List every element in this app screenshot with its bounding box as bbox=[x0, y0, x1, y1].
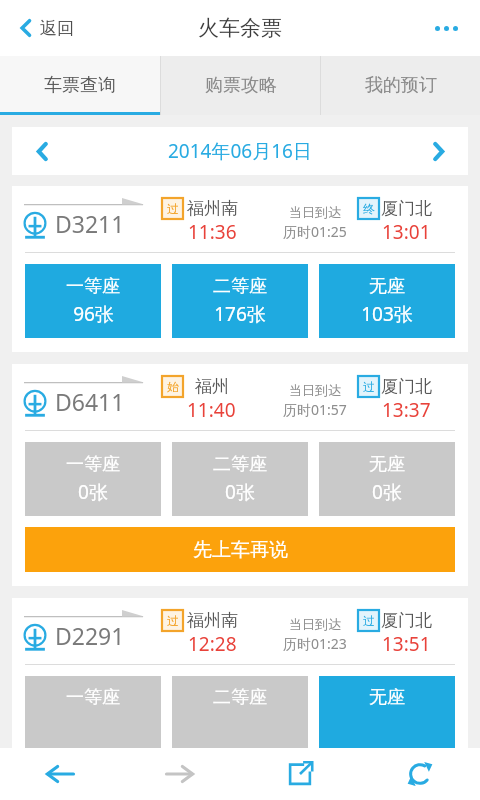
staticText: 火车余票 bbox=[198, 15, 282, 41]
staticText: 历时01:23 bbox=[283, 634, 347, 653]
staticText: 13:51 bbox=[382, 631, 431, 657]
staticText: D3211 bbox=[55, 208, 125, 239]
button[interactable]: 一等座 bbox=[25, 676, 161, 748]
button[interactable]: 我的预订 bbox=[321, 56, 480, 115]
button[interactable]: 一等座 bbox=[25, 442, 161, 516]
button[interactable]: Share bbox=[240, 748, 360, 800]
button[interactable]: 返回 bbox=[14, 11, 78, 45]
staticText: 0张 bbox=[225, 479, 255, 505]
staticText: 厦门北 bbox=[381, 610, 432, 631]
staticText: 返回 bbox=[40, 18, 74, 39]
staticText: 无座 bbox=[369, 686, 405, 709]
staticText: 先上车再说 bbox=[193, 538, 288, 562]
staticText: 车票查询 bbox=[44, 74, 116, 97]
staticText: 终 bbox=[363, 201, 375, 216]
staticText: 厦门北 bbox=[381, 198, 432, 219]
staticText: 过 bbox=[363, 379, 375, 394]
button[interactable]: 车票查询 bbox=[0, 56, 160, 115]
staticText: 我的预订 bbox=[365, 74, 437, 97]
staticText: 二等座 bbox=[213, 275, 267, 298]
staticText: 始 bbox=[167, 379, 179, 394]
staticText: 176张 bbox=[214, 301, 266, 327]
button[interactable]: Forward bbox=[120, 748, 240, 800]
staticText: 当日到达 bbox=[289, 204, 341, 220]
staticText: 13:37 bbox=[382, 397, 431, 423]
button[interactable]: 二等座 bbox=[172, 676, 308, 748]
staticText: D6411 bbox=[55, 386, 125, 417]
staticText: 11:40 bbox=[187, 397, 236, 423]
staticText: D2291 bbox=[55, 620, 125, 651]
staticText: 当日到达 bbox=[289, 616, 341, 632]
button[interactable]: D2291 bbox=[12, 598, 468, 748]
staticText: 一等座 bbox=[66, 453, 120, 476]
button[interactable]: 无座 bbox=[319, 264, 455, 338]
button[interactable]: Back bbox=[0, 748, 120, 800]
staticText: 过 bbox=[167, 613, 179, 628]
button[interactable]: Next day bbox=[408, 127, 468, 175]
staticText: 历时01:57 bbox=[283, 400, 347, 419]
staticText: 无座 bbox=[369, 275, 405, 298]
button[interactable]: 无座 bbox=[319, 676, 455, 748]
button[interactable]: 二等座 bbox=[172, 264, 308, 338]
staticText: 一等座 bbox=[66, 275, 120, 298]
staticText: 当日到达 bbox=[289, 382, 341, 398]
staticText: 11:36 bbox=[188, 219, 237, 245]
staticText: 福州南 bbox=[187, 610, 238, 631]
staticText: 103张 bbox=[361, 301, 413, 327]
staticText: 二等座 bbox=[213, 686, 267, 709]
staticText: 二等座 bbox=[213, 453, 267, 476]
staticText: 过 bbox=[363, 613, 375, 628]
button[interactable]: Refresh bbox=[360, 748, 480, 800]
staticText: 福州南 bbox=[187, 198, 238, 219]
staticText: 历时01:25 bbox=[283, 222, 347, 241]
staticText: 福州 bbox=[195, 376, 229, 397]
button[interactable]: 二等座 bbox=[172, 442, 308, 516]
staticText: 96张 bbox=[73, 301, 114, 327]
button[interactable]: More options bbox=[427, 18, 466, 39]
button[interactable]: 一等座 bbox=[25, 264, 161, 338]
button[interactable]: D6411 bbox=[12, 364, 468, 586]
staticText: 0张 bbox=[78, 479, 108, 505]
button[interactable]: 先上车再说 bbox=[25, 527, 455, 572]
staticText: 2014年06月16日 bbox=[168, 138, 312, 164]
staticText: 0张 bbox=[372, 479, 402, 505]
staticText: 无座 bbox=[369, 453, 405, 476]
staticText: 13:01 bbox=[382, 219, 431, 245]
button[interactable]: 购票攻略 bbox=[161, 56, 320, 115]
button[interactable]: Previous day bbox=[12, 127, 72, 175]
staticText: 购票攻略 bbox=[205, 74, 277, 97]
button[interactable]: D3211 bbox=[12, 186, 468, 352]
button[interactable]: 无座 bbox=[319, 442, 455, 516]
staticText: 一等座 bbox=[66, 686, 120, 709]
staticText: 过 bbox=[167, 201, 179, 216]
staticText: 12:28 bbox=[188, 631, 237, 657]
staticText: 厦门北 bbox=[381, 376, 432, 397]
